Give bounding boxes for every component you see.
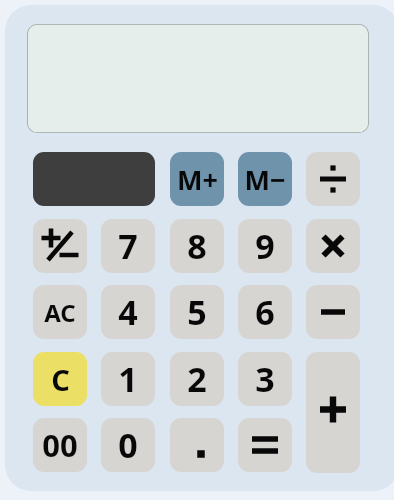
button[interactable]: M− <box>238 152 292 206</box>
button[interactable]: 00 <box>33 418 87 472</box>
button[interactable]: 2 <box>170 352 224 406</box>
button[interactable]: 9 <box>238 219 292 273</box>
button[interactable]: 8 <box>170 219 224 273</box>
staticText: 4 <box>118 289 138 335</box>
staticText: 8 <box>187 223 207 269</box>
button[interactable]: AC <box>33 285 87 339</box>
button[interactable]: Plus minus sign <box>33 219 87 273</box>
button[interactable]: 4 <box>101 285 155 339</box>
button[interactable]: Decimal point <box>170 418 224 472</box>
staticText: 9 <box>255 223 275 269</box>
staticText: 2 <box>187 356 207 402</box>
staticText: 6 <box>255 289 275 335</box>
staticText: C <box>51 360 70 399</box>
staticText: 7 <box>118 223 138 269</box>
button[interactable]: 5 <box>170 285 224 339</box>
button[interactable]: 6 <box>238 285 292 339</box>
staticText: 0 <box>118 422 138 468</box>
staticText: 00 <box>42 424 78 466</box>
button[interactable]: 7 <box>101 219 155 273</box>
button[interactable]: C <box>33 352 87 406</box>
button[interactable]: 3 <box>238 352 292 406</box>
button[interactable]: Multiply <box>306 219 360 273</box>
staticText: 1 <box>118 356 138 402</box>
staticText: 3 <box>255 356 275 402</box>
button[interactable]: Memory recall <box>33 152 155 206</box>
staticText: AC <box>44 296 76 329</box>
button[interactable]: Add <box>306 352 360 473</box>
staticText: 5 <box>187 289 207 335</box>
button[interactable]: Equals <box>238 418 292 472</box>
button[interactable]: Subtract <box>306 285 360 339</box>
button[interactable]: 0 <box>101 418 155 472</box>
button[interactable]: 1 <box>101 352 155 406</box>
staticText: M+ <box>177 161 218 198</box>
staticText: M− <box>244 161 286 198</box>
button[interactable]: Divide <box>306 152 360 206</box>
button[interactable]: M+ <box>170 152 224 206</box>
